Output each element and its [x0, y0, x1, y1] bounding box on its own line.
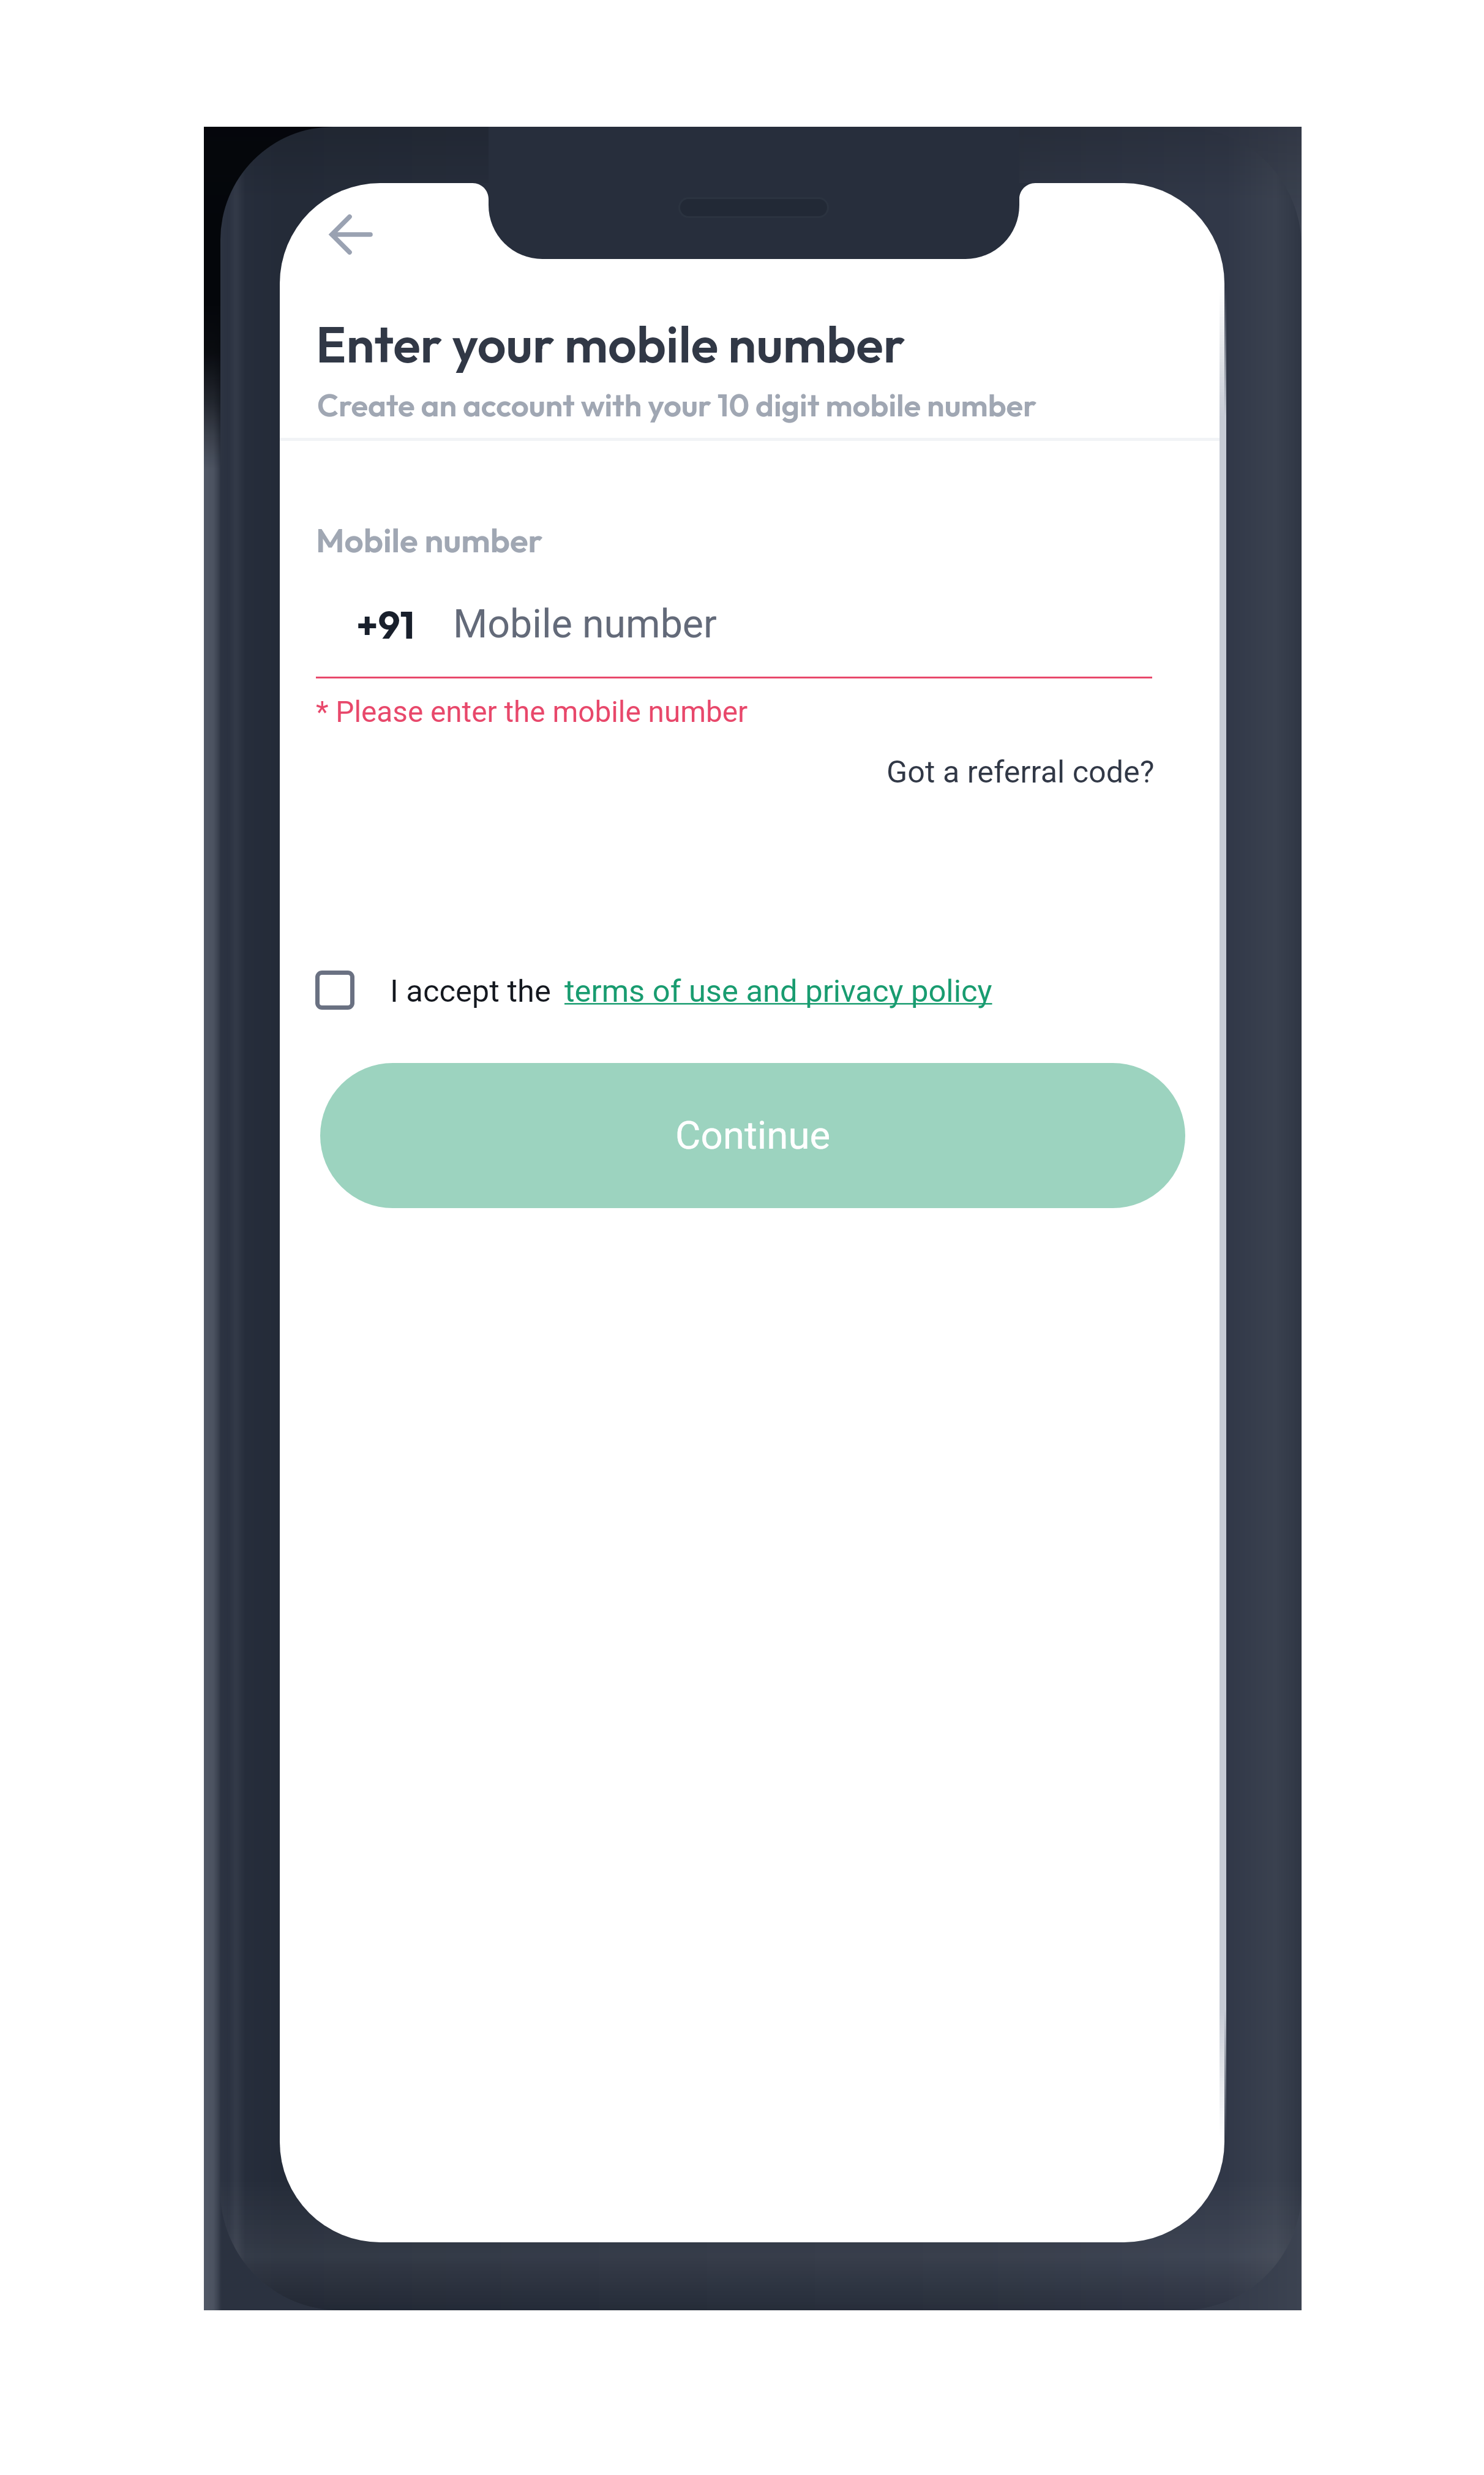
- staticText: Continue: [675, 1113, 831, 1159]
- staticText: terms of use and privacy policy: [564, 973, 992, 1009]
- button[interactable]: Got a referral code?: [877, 740, 1145, 776]
- button[interactable]: I accept the terms: [303, 960, 572, 1023]
- staticText: +91: [356, 600, 415, 648]
- staticText: Mobile number: [316, 519, 543, 561]
- staticText: Got a referral code?: [886, 754, 1155, 790]
- staticText: I accept the: [390, 973, 559, 1009]
- staticText: Mobile number: [453, 601, 717, 647]
- button[interactable]: terms of use and privacy policy: [554, 960, 1001, 1023]
- button[interactable]: Back: [306, 199, 377, 270]
- button[interactable]: Continue: [320, 1063, 1185, 1208]
- staticText: Enter your mobile number: [316, 312, 905, 376]
- staticText: * Please enter the mobile number: [316, 695, 748, 729]
- staticText: Create an account with your 10 digit mob…: [317, 385, 1037, 424]
